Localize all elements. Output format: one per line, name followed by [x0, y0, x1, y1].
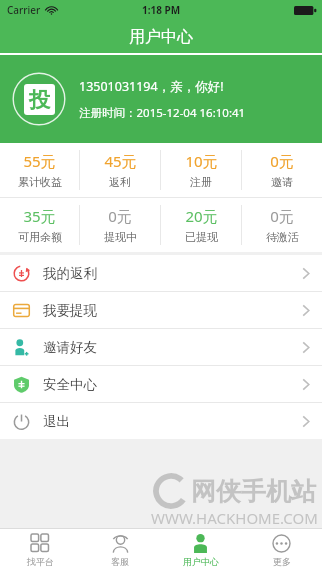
staticText: 我要提现: [43, 302, 97, 319]
staticText: 返利: [109, 175, 131, 189]
staticText: 用户中心: [129, 27, 193, 47]
staticText: 13501031194，亲，你好!: [79, 78, 224, 95]
button[interactable]: 更多: [241, 529, 322, 572]
staticText: 10元: [185, 151, 218, 171]
button[interactable]: 我的返利: [0, 255, 322, 291]
button[interactable]: 邀请好友: [0, 329, 322, 365]
staticText: 客服: [111, 556, 129, 567]
staticText: 1:18 PM: [142, 3, 181, 17]
button[interactable]: 找平台: [0, 529, 80, 572]
button[interactable]: 55元: [0, 143, 79, 197]
button[interactable]: 我要提现: [0, 292, 322, 328]
staticText: 可用余额: [18, 230, 62, 244]
staticText: 找平台: [27, 556, 54, 567]
staticText: 用户中心: [183, 556, 219, 567]
staticText: Carrier: [7, 3, 41, 17]
staticText: 注册: [190, 175, 212, 189]
staticText: 0元: [108, 206, 132, 226]
button[interactable]: 用户中心: [160, 529, 241, 572]
staticText: 注册时间：2015-12-04 16:10:41: [79, 105, 246, 121]
button[interactable]: 0元: [80, 198, 160, 252]
staticText: 安全中心: [43, 376, 97, 393]
staticText: 邀请: [271, 175, 293, 189]
staticText: 邀请好友: [43, 339, 97, 356]
button[interactable]: 客服: [80, 529, 160, 572]
staticText: 提现中: [104, 230, 137, 244]
button[interactable]: 20元: [161, 198, 241, 252]
staticText: WWW.HACKHOME.COM: [151, 508, 318, 528]
button[interactable]: 0元: [242, 198, 322, 252]
button[interactable]: 45元: [80, 143, 160, 197]
staticText: 35元: [23, 206, 56, 226]
button[interactable]: 退出: [0, 403, 322, 439]
staticText: 0元: [270, 206, 294, 226]
button[interactable]: 35元: [0, 198, 79, 252]
staticText: 20元: [185, 206, 218, 226]
button[interactable]: 0元: [242, 143, 322, 197]
staticText: 45元: [104, 151, 137, 171]
button[interactable]: 10元: [161, 143, 241, 197]
staticText: 已提现: [185, 230, 218, 244]
staticText: 网侠手机站: [191, 476, 316, 507]
staticText: 累计收益: [18, 175, 62, 189]
staticText: 0元: [270, 151, 294, 171]
staticText: 我的返利: [43, 265, 97, 282]
button[interactable]: 投: [0, 55, 322, 143]
staticText: 退出: [43, 413, 70, 430]
staticText: 待激活: [266, 230, 299, 244]
staticText: 更多: [273, 556, 291, 567]
button[interactable]: 安全中心: [0, 366, 322, 402]
staticText: 投: [29, 87, 50, 113]
staticText: 55元: [23, 151, 56, 171]
